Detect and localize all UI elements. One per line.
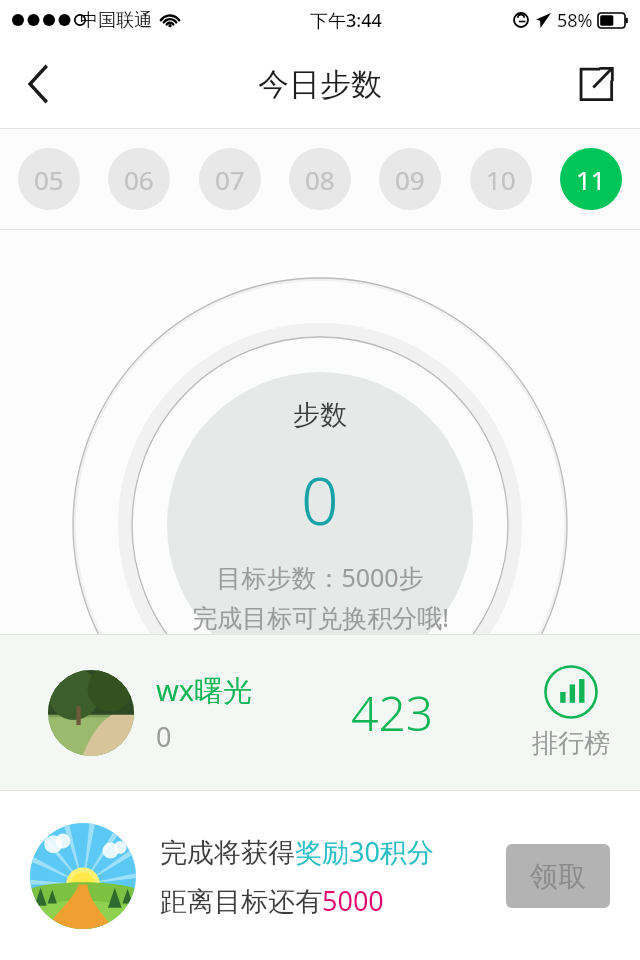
button[interactable]: 11 [560, 148, 622, 210]
button[interactable]: 10 [470, 148, 532, 210]
button[interactable]: 排行榜 [532, 665, 610, 760]
staticText: 07 [215, 162, 245, 197]
button[interactable]: 09 [379, 148, 441, 210]
button[interactable]: 06 [108, 148, 170, 210]
staticText: 中国联通 [80, 9, 152, 32]
staticText: 0 [301, 454, 339, 544]
staticText: 05 [34, 162, 64, 197]
staticText: 10 [486, 162, 516, 197]
staticText: 下午3:44 [310, 8, 382, 33]
staticText: 11 [576, 162, 606, 197]
button[interactable]: wx曙光 [0, 635, 640, 790]
staticText: 0 [156, 718, 172, 755]
staticText: 排行榜 [532, 727, 610, 760]
staticText: 目标步数：5000步 [216, 560, 424, 594]
staticText: 09 [395, 162, 425, 197]
button[interactable]: 07 [199, 148, 261, 210]
button[interactable]: 领取 [506, 844, 610, 908]
button[interactable]: Back [8, 54, 68, 114]
staticText: 完成目标可兑换积分哦! [192, 600, 449, 634]
button[interactable]: 08 [289, 148, 351, 210]
staticText: 步数 [293, 398, 347, 432]
button[interactable]: Share [566, 54, 626, 114]
staticText: 完成将获得奖励30积分 [160, 833, 434, 870]
staticText: 领取 [530, 859, 586, 894]
staticText: 06 [124, 162, 154, 197]
staticText: 423 [351, 680, 434, 745]
staticText: 今日步数 [258, 65, 382, 104]
staticText: 08 [305, 162, 335, 197]
staticText: 距离目标还有5000 [160, 882, 384, 919]
staticText: 58% [557, 8, 593, 33]
staticText: wx曙光 [156, 670, 253, 710]
button[interactable]: 05 [18, 148, 80, 210]
